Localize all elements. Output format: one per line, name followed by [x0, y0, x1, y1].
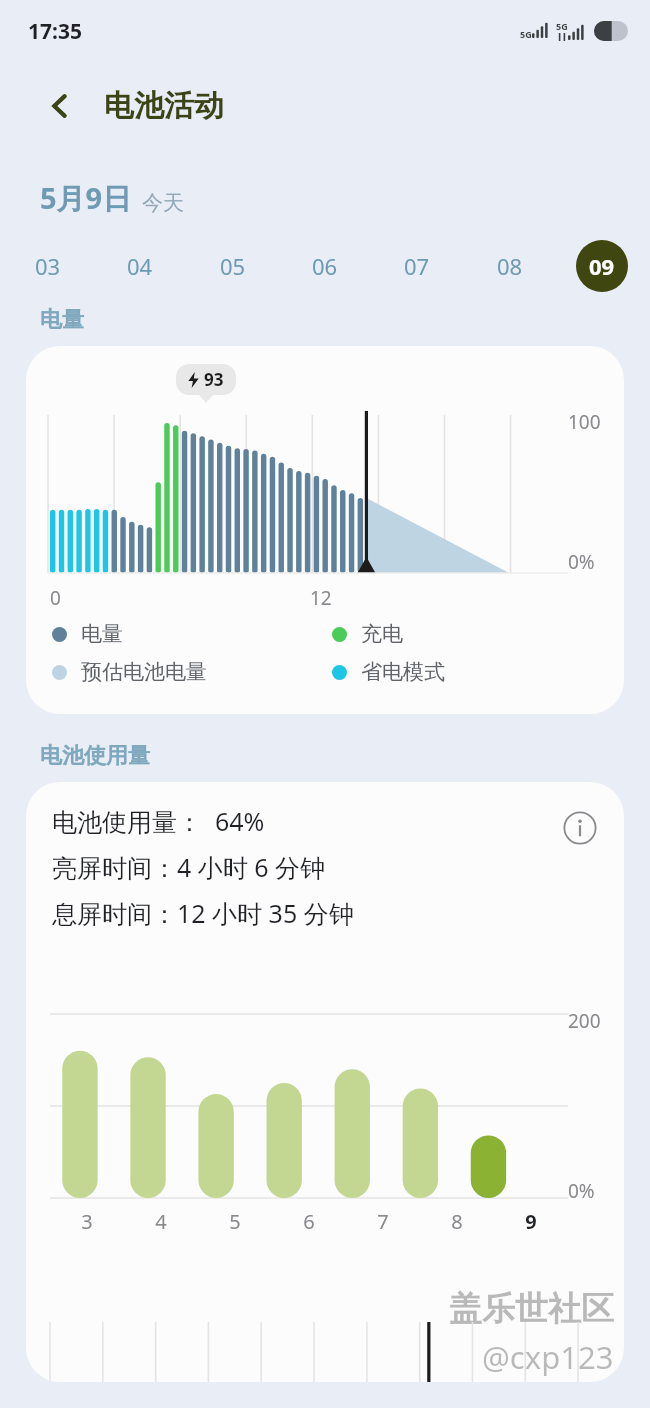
- button[interactable]: 09: [576, 240, 628, 292]
- staticText: 亮屏时间：4 小时 6 分钟: [52, 850, 326, 884]
- staticText: 06: [312, 251, 338, 281]
- button[interactable]: 93: [26, 346, 624, 714]
- staticText: 0%: [568, 1178, 595, 1204]
- staticText: 4: [155, 1208, 167, 1235]
- button[interactable]: 05: [207, 240, 259, 292]
- staticText: 04: [127, 251, 153, 281]
- button[interactable]: 04: [114, 240, 166, 292]
- staticText: 5G: [556, 20, 568, 32]
- staticText: 息屏时间：12 小时 35 分钟: [52, 896, 354, 930]
- staticText: 省电模式: [361, 659, 445, 685]
- staticText: 盖乐世社区: [449, 1288, 614, 1330]
- staticText: 03: [35, 251, 61, 281]
- staticText: 93: [204, 368, 224, 391]
- staticText: 05: [220, 251, 246, 281]
- staticText: 8: [451, 1208, 463, 1235]
- staticText: 预估电池电量: [81, 659, 207, 685]
- staticText: 电池使用量: [40, 742, 150, 770]
- button[interactable]: Back: [36, 82, 84, 130]
- staticText: 08: [497, 251, 523, 281]
- staticText: 今天: [142, 190, 184, 216]
- staticText: 5: [229, 1208, 241, 1235]
- button[interactable]: 06: [299, 240, 351, 292]
- staticText: 200: [568, 1008, 601, 1034]
- button[interactable]: 08: [484, 240, 536, 292]
- staticText: 6: [303, 1208, 315, 1235]
- staticText: 9: [525, 1208, 537, 1235]
- staticText: 0: [50, 585, 61, 611]
- staticText: 电量: [40, 306, 84, 334]
- button[interactable]: 07: [391, 240, 443, 292]
- staticText: @cxp123: [482, 1336, 614, 1378]
- staticText: 电池使用量： 64%: [52, 804, 265, 838]
- button[interactable]: 03: [22, 240, 74, 292]
- staticText: 电量: [81, 621, 123, 647]
- staticText: 17:35: [28, 17, 82, 46]
- button[interactable]: 电池使用量： 64%: [26, 782, 624, 1382]
- staticText: 100: [568, 409, 601, 435]
- staticText: 7: [377, 1208, 389, 1235]
- staticText: 07: [404, 251, 430, 281]
- staticText: 充电: [361, 621, 403, 647]
- button[interactable]: Info: [558, 806, 602, 850]
- staticText: 5月9日: [40, 178, 132, 218]
- staticText: 12: [310, 585, 332, 611]
- staticText: 5G: [520, 28, 532, 40]
- staticText: 09: [589, 251, 615, 281]
- staticText: 电池活动: [104, 87, 224, 125]
- staticText: 0%: [568, 549, 595, 575]
- staticText: 3: [81, 1208, 93, 1235]
